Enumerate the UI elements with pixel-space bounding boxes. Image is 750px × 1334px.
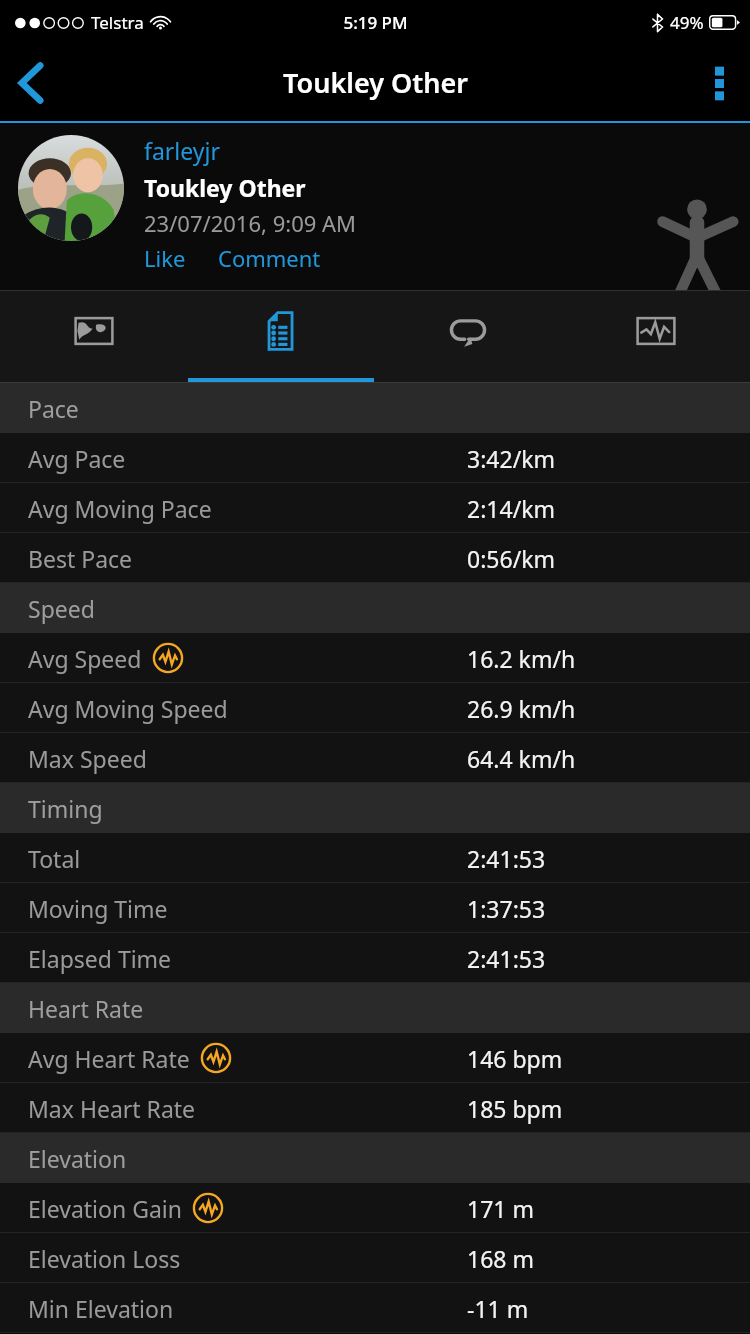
button[interactable]: Back [0, 48, 62, 118]
button[interactable]: Moving Time [0, 883, 750, 933]
button[interactable]: Elapsed Time [0, 933, 750, 983]
staticText: Heart Rate [28, 993, 144, 1024]
button[interactable]: Avg Pace [0, 433, 750, 483]
staticText: 26.9 km/h [467, 693, 576, 724]
staticText: Moving Time [28, 893, 168, 924]
button[interactable]: Elevation Loss [0, 1233, 750, 1283]
staticText: 23/07/2016, 9:09 AM [144, 208, 357, 238]
button[interactable]: Map [0, 291, 187, 383]
button[interactable]: Max Speed [0, 733, 750, 783]
button[interactable]: More options [688, 48, 750, 118]
staticText: Elevation Loss [28, 1243, 181, 1274]
staticText: Max Heart Rate [28, 1093, 196, 1124]
staticText: Speed [28, 593, 95, 624]
staticText: Avg Heart Rate [28, 1043, 190, 1074]
button[interactable]: Laps [374, 291, 562, 383]
button[interactable]: Avg Moving Pace [0, 483, 750, 533]
staticText: Elevation Gain [28, 1193, 182, 1224]
staticText: 146 bpm [467, 1043, 563, 1074]
staticText: 185 bpm [467, 1093, 563, 1124]
staticText: 2:41:53 [467, 943, 546, 974]
staticText: Avg Moving Speed [28, 693, 228, 724]
staticText: -11 m [467, 1293, 529, 1324]
staticText: Min Elevation [28, 1293, 174, 1324]
staticText: Avg Speed [28, 643, 142, 674]
staticText: Best Pace [28, 543, 133, 574]
staticText: 1:37:53 [467, 893, 546, 924]
staticText: 49% [670, 11, 704, 34]
staticText: 3:42/km [467, 443, 555, 474]
staticText: Comment [218, 243, 321, 273]
staticText: Toukley Other [144, 172, 306, 203]
staticText: Telstra [91, 11, 144, 34]
staticText: Timing [28, 793, 103, 824]
staticText: 2:41:53 [467, 843, 546, 874]
staticText: Elapsed Time [28, 943, 172, 974]
button[interactable] [18, 135, 124, 241]
staticText: 2:14/km [467, 493, 555, 524]
button[interactable]: Comment [218, 243, 321, 273]
button[interactable]: Elevation Gain [0, 1183, 750, 1233]
button[interactable]: Avg Speed [0, 633, 750, 683]
button[interactable]: Charts [562, 291, 750, 383]
button[interactable]: Max Heart Rate [0, 1083, 750, 1133]
staticText: Pace [28, 393, 79, 424]
staticText: Like [144, 243, 186, 273]
staticText: Toukley Other [283, 64, 468, 101]
staticText: Elevation [28, 1143, 127, 1174]
staticText: 0:56/km [467, 543, 555, 574]
button[interactable]: Best Pace [0, 533, 750, 583]
button[interactable]: Total [0, 833, 750, 883]
button[interactable]: Min Elevation [0, 1283, 750, 1333]
button[interactable]: Avg Moving Speed [0, 683, 750, 733]
staticText: 171 m [467, 1193, 534, 1224]
staticText: 64.4 km/h [467, 743, 576, 774]
staticText: Max Speed [28, 743, 147, 774]
staticText: Avg Pace [28, 443, 126, 474]
button[interactable]: Like [144, 243, 186, 273]
staticText: 5:19 PM [343, 11, 408, 34]
button[interactable]: Avg Heart Rate [0, 1033, 750, 1083]
staticText: 16.2 km/h [467, 643, 576, 674]
button[interactable]: Details [187, 291, 374, 383]
staticText: Avg Moving Pace [28, 493, 212, 524]
staticText: Total [28, 843, 81, 874]
staticText: 168 m [467, 1243, 534, 1274]
button[interactable]: farleyjr [144, 135, 220, 166]
